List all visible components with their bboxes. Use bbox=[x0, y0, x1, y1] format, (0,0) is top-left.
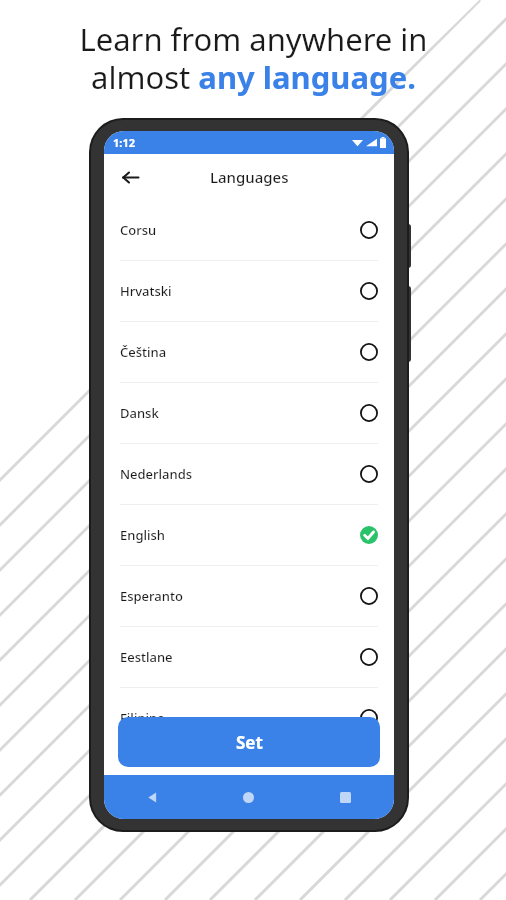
button[interactable]: Home bbox=[200, 775, 297, 819]
staticText: English bbox=[120, 526, 165, 544]
button[interactable]: Hrvatski bbox=[104, 261, 394, 321]
button[interactable]: Set bbox=[118, 717, 380, 767]
staticText: Esperanto bbox=[120, 587, 183, 605]
staticText: Eestlane bbox=[120, 648, 173, 666]
button[interactable]: Back bbox=[104, 775, 200, 819]
staticText: Hrvatski bbox=[120, 282, 172, 300]
staticText: Corsu bbox=[120, 221, 157, 239]
staticText: Set bbox=[236, 731, 263, 754]
button[interactable]: English bbox=[104, 505, 394, 565]
button[interactable]: Čeština bbox=[104, 322, 394, 382]
staticText: Nederlands bbox=[120, 465, 193, 483]
button[interactable]: Recents bbox=[297, 775, 394, 819]
staticText: Čeština bbox=[120, 343, 167, 361]
staticText: Dansk bbox=[120, 404, 159, 422]
button[interactable]: Eestlane bbox=[104, 627, 394, 687]
button[interactable]: Corsu bbox=[104, 200, 394, 260]
staticText: Languages bbox=[210, 167, 289, 187]
button[interactable]: Esperanto bbox=[104, 566, 394, 626]
staticText: Filipino bbox=[120, 709, 166, 727]
button[interactable]: Dansk bbox=[104, 383, 394, 443]
staticText: Learn from anywhere in almost any langua… bbox=[79, 18, 428, 98]
button[interactable]: Filipino bbox=[104, 688, 394, 748]
button[interactable]: Nederlands bbox=[104, 444, 394, 504]
button[interactable]: Back bbox=[112, 159, 148, 195]
staticText: 1:12 bbox=[113, 135, 135, 150]
